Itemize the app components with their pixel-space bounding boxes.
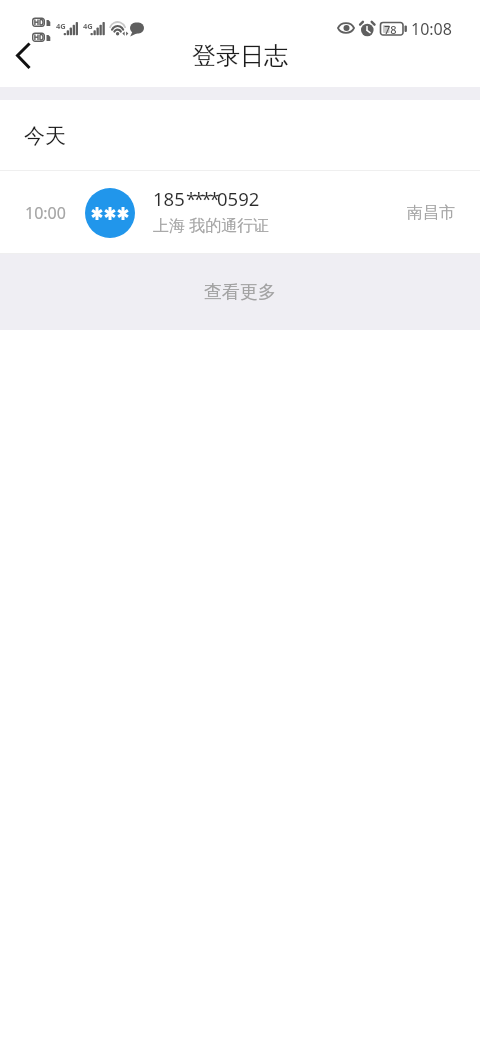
staticText: 登录日志	[192, 41, 288, 71]
staticText: 上海 我的通行证	[153, 214, 270, 236]
staticText: 78	[384, 22, 397, 37]
button[interactable]: Back	[0, 44, 46, 88]
button[interactable]: 10:00	[0, 171, 480, 254]
staticText: 今天	[24, 123, 66, 149]
staticText: 0592	[217, 186, 260, 211]
staticText: 185	[153, 186, 185, 211]
staticText: 查看更多	[204, 281, 276, 304]
staticText: 4G	[83, 21, 93, 31]
button[interactable]: 查看更多	[0, 254, 480, 330]
staticText: 10:08	[411, 18, 452, 40]
staticText: ****	[186, 186, 218, 211]
staticText: 4G	[56, 21, 66, 31]
staticText: 10:00	[25, 202, 66, 224]
staticText: 南昌市	[407, 203, 455, 223]
